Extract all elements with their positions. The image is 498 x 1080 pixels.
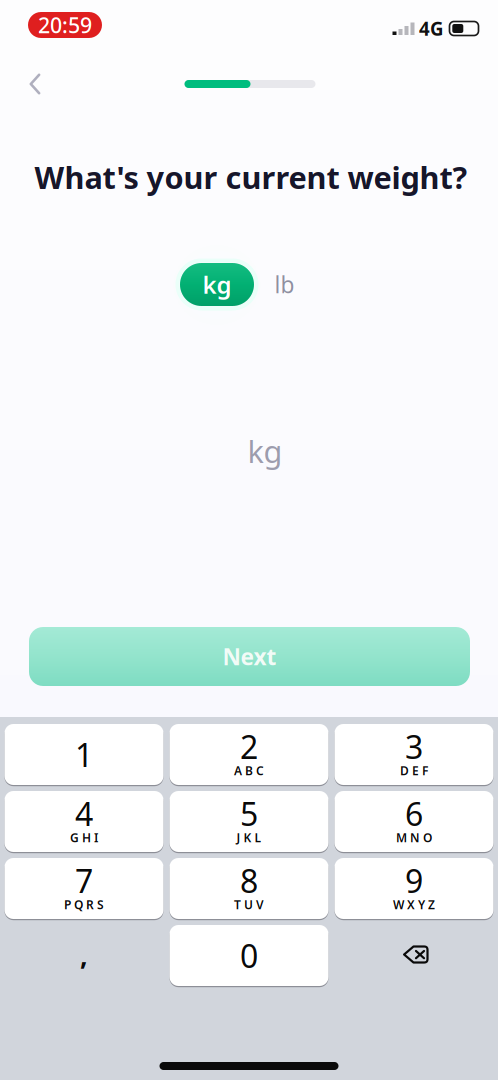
button[interactable]: 9 <box>334 858 493 919</box>
staticText: 0 <box>240 934 258 977</box>
staticText: 3 <box>405 725 423 768</box>
staticText: A B C <box>234 762 264 778</box>
staticText: 4G <box>419 16 444 41</box>
button[interactable]: 5 <box>169 791 328 852</box>
button[interactable]: 0 <box>169 925 328 986</box>
button[interactable]: lb <box>262 263 306 306</box>
staticText: 1 <box>75 733 93 776</box>
staticText: What's your current weight? <box>34 157 467 197</box>
staticText: kg <box>247 431 282 471</box>
staticText: 7 <box>75 859 93 902</box>
button[interactable]: Next <box>29 627 470 686</box>
staticText: 9 <box>405 859 423 902</box>
button[interactable]: , <box>4 925 163 986</box>
staticText: M N O <box>396 829 432 845</box>
staticText: D E F <box>400 762 428 778</box>
staticText: P Q R S <box>64 896 104 912</box>
staticText: Next <box>222 641 276 671</box>
staticText: T U V <box>234 896 264 912</box>
staticText: W X Y Z <box>393 896 435 912</box>
button[interactable]: 2 <box>169 724 328 785</box>
staticText: J K L <box>236 829 261 845</box>
staticText: 8 <box>240 859 258 902</box>
button[interactable]: Delete <box>334 925 493 986</box>
button[interactable]: 7 <box>4 858 163 919</box>
staticText: G H I <box>70 829 98 845</box>
button[interactable]: 6 <box>334 791 493 852</box>
button[interactable]: 4 <box>4 791 163 852</box>
button[interactable]: 1 <box>4 724 163 785</box>
staticText: 4 <box>75 792 93 835</box>
button[interactable]: kg <box>180 263 254 306</box>
staticText: kg <box>202 269 231 300</box>
staticText: , <box>80 938 88 973</box>
staticText: 6 <box>405 792 423 835</box>
staticText: 5 <box>240 792 258 835</box>
button[interactable]: Back <box>13 62 57 106</box>
staticText: lb <box>274 269 294 299</box>
button[interactable]: 8 <box>169 858 328 919</box>
button[interactable]: 3 <box>334 724 493 785</box>
staticText: 2 <box>240 725 258 768</box>
staticText: 20:59 <box>38 11 92 39</box>
